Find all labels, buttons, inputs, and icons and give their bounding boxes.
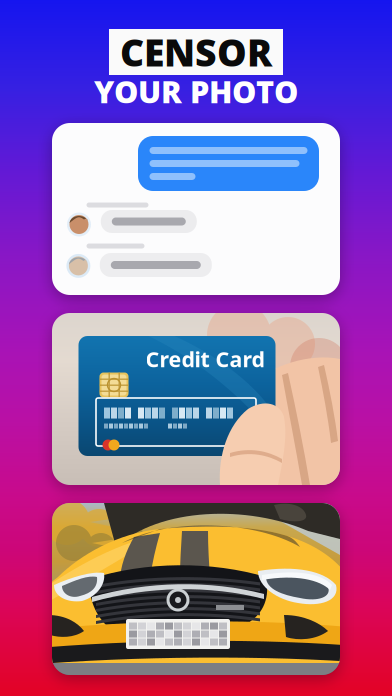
staticText: CENSOR: [120, 27, 272, 77]
staticText: YOUR PHOTO: [94, 71, 298, 112]
staticText: Credit Card: [145, 345, 264, 373]
